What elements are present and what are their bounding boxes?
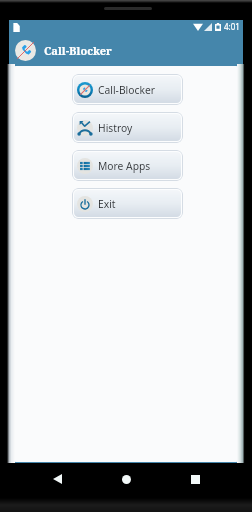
staticText: Histroy xyxy=(98,121,133,135)
button[interactable]: Back xyxy=(45,467,69,491)
button[interactable]: Home xyxy=(114,467,138,491)
button[interactable]: Call-Blocker xyxy=(74,76,181,103)
staticText: 4:01 xyxy=(224,21,240,32)
staticText: More Apps xyxy=(98,159,151,173)
button[interactable]: More Apps xyxy=(74,152,181,179)
staticText: Call-Blocker xyxy=(98,83,155,97)
button[interactable]: Recents xyxy=(183,467,207,491)
button[interactable]: Histroy xyxy=(74,114,181,141)
button[interactable]: Exit xyxy=(74,190,181,217)
staticText: Call-Blocker xyxy=(44,43,112,58)
staticText: Exit xyxy=(98,197,116,211)
